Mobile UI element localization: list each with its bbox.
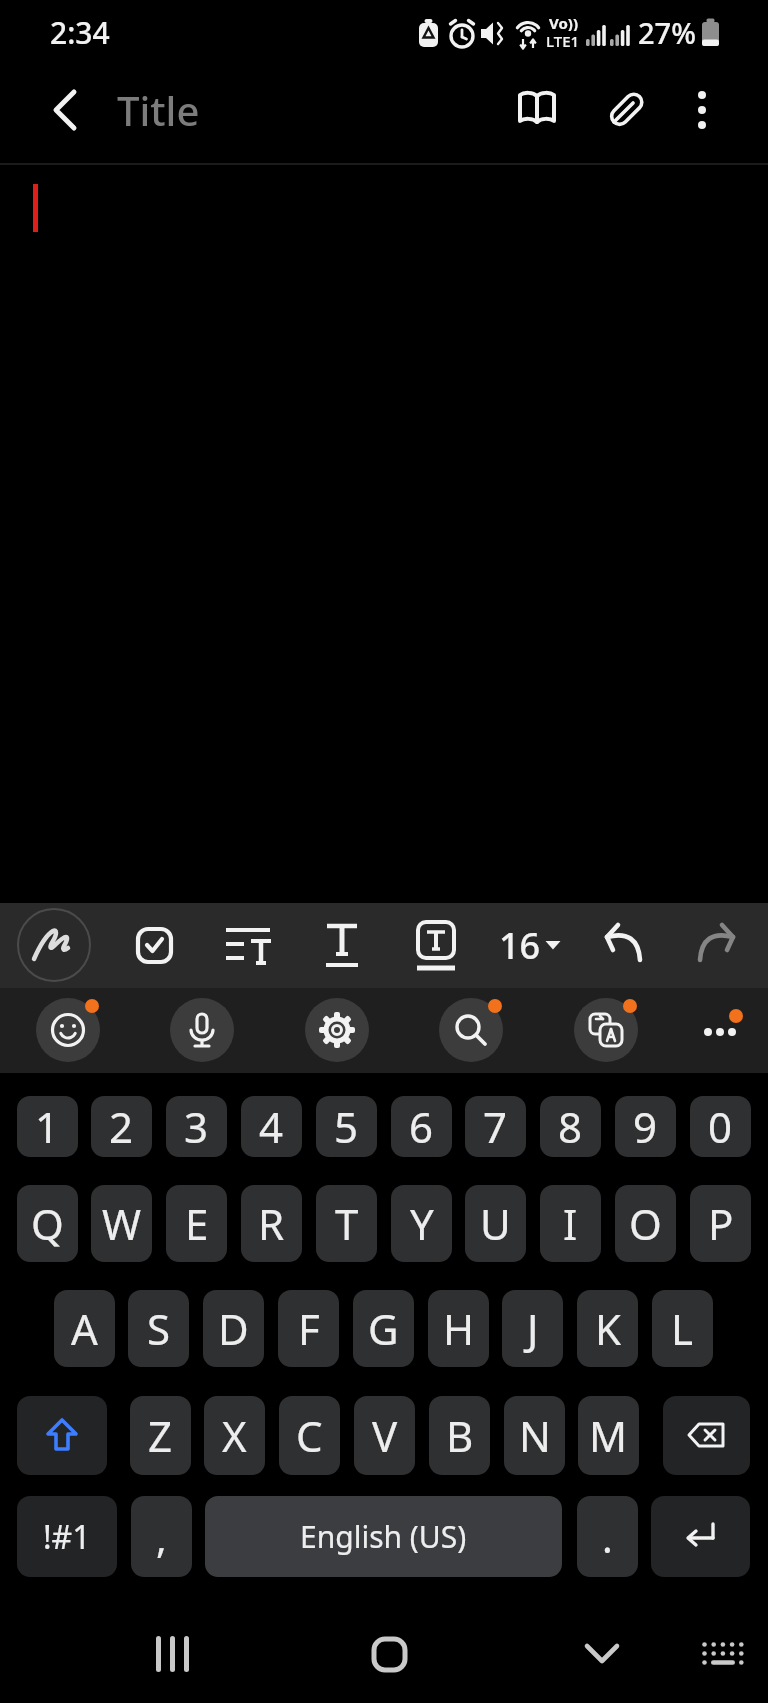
- staticText: English (US): [300, 1516, 467, 1557]
- staticText: D: [218, 1300, 249, 1357]
- staticText: Z: [148, 1407, 173, 1464]
- staticText: K: [595, 1300, 621, 1357]
- staticText: 5: [334, 1098, 359, 1155]
- staticText: H: [443, 1300, 475, 1357]
- staticText: 8: [558, 1098, 583, 1155]
- staticText: V: [372, 1407, 398, 1464]
- staticText: P: [708, 1195, 734, 1252]
- staticText: 3: [184, 1098, 209, 1155]
- staticText: G: [368, 1300, 399, 1357]
- staticText: 1: [35, 1098, 60, 1155]
- staticText: LTE1: [546, 31, 580, 49]
- staticText: Y: [410, 1195, 434, 1252]
- staticText: A: [71, 1300, 98, 1357]
- staticText: 27%: [638, 13, 696, 51]
- staticText: 16: [499, 921, 541, 970]
- staticText: T: [335, 1195, 359, 1252]
- staticText: B: [446, 1407, 474, 1464]
- staticText: Title: [117, 83, 200, 137]
- staticText: M: [589, 1407, 628, 1464]
- staticText: 2: [109, 1098, 134, 1155]
- staticText: Q: [31, 1195, 64, 1252]
- staticText: E: [185, 1195, 209, 1252]
- staticText: C: [296, 1407, 323, 1464]
- staticText: 9: [633, 1098, 658, 1155]
- staticText: R: [258, 1195, 285, 1252]
- staticText: 7: [483, 1098, 508, 1155]
- staticText: F: [298, 1300, 320, 1357]
- staticText: Vo)): [549, 13, 578, 31]
- staticText: U: [480, 1195, 511, 1252]
- staticText: 6: [409, 1098, 434, 1155]
- staticText: N: [519, 1407, 551, 1464]
- staticText: 4: [259, 1098, 284, 1155]
- staticText: !#1: [43, 1515, 91, 1559]
- staticText: I: [563, 1195, 578, 1252]
- staticText: 2:34: [50, 12, 110, 52]
- staticText: .: [602, 1510, 613, 1564]
- staticText: X: [222, 1407, 247, 1464]
- staticText: ,: [156, 1510, 167, 1564]
- staticText: L: [671, 1300, 694, 1357]
- staticText: O: [629, 1195, 662, 1252]
- staticText: 0: [708, 1098, 733, 1155]
- staticText: J: [527, 1300, 539, 1357]
- staticText: W: [102, 1195, 142, 1252]
- staticText: S: [147, 1300, 171, 1357]
